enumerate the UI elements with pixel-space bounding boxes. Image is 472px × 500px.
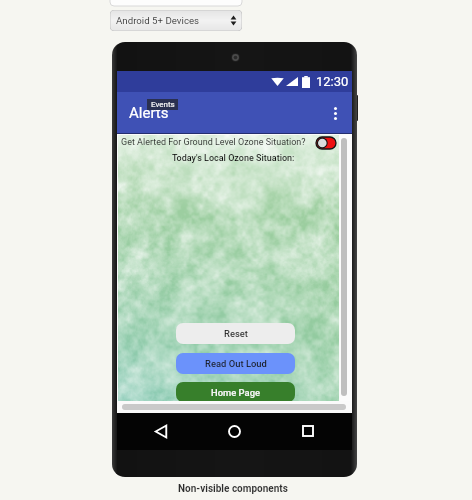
- button[interactable]: Reset: [176, 323, 295, 344]
- button[interactable]: Ozone alert toggle: [316, 137, 336, 149]
- button[interactable]: Read Out Loud: [176, 353, 295, 374]
- staticText: Today's Local Ozone Situation:: [172, 153, 295, 164]
- staticText: Reset: [224, 328, 248, 339]
- button[interactable]: Home Page: [176, 382, 295, 401]
- staticText: Non-visible components: [178, 483, 288, 495]
- staticText: 12:30: [316, 74, 349, 89]
- staticText: Get Alerted For Ground Level Ozone Situa…: [121, 137, 314, 148]
- staticText: Events: [151, 100, 175, 109]
- staticText: Home Page: [211, 387, 260, 398]
- staticText: Android 5+ Devices: [116, 15, 200, 26]
- button[interactable]: More options: [323, 101, 347, 125]
- staticText: Read Out Loud: [205, 358, 267, 369]
- button[interactable]: Android 5+ Devices: [110, 10, 242, 31]
- staticText: Alerts: [129, 104, 169, 122]
- button[interactable]: Back: [148, 418, 174, 444]
- button[interactable]: Home: [221, 418, 247, 444]
- button[interactable]: Recent apps: [295, 418, 321, 444]
